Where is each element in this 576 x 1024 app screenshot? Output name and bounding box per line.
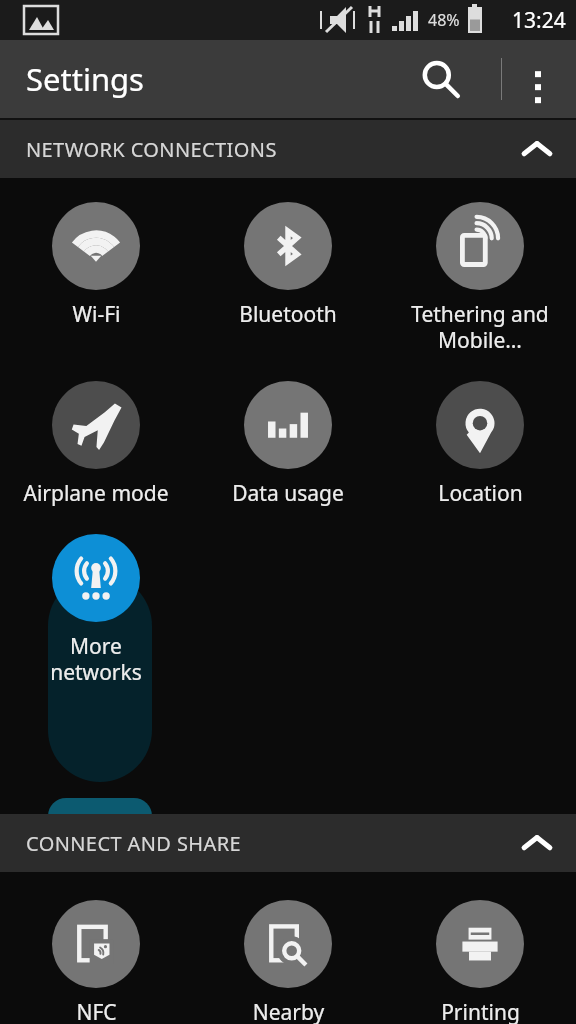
button[interactable]: Airplane mode [8, 379, 184, 508]
staticText: CONNECT AND SHARE [26, 830, 242, 857]
button[interactable]: Bluetooth [200, 200, 376, 329]
button[interactable]: More options [510, 45, 566, 113]
button[interactable]: More networks [8, 532, 184, 687]
staticText: Bluetooth [239, 300, 337, 329]
button[interactable]: Tethering and Mobile… [392, 200, 568, 355]
button[interactable]: Wi-Fi [8, 200, 184, 329]
staticText: Wi-Fi [72, 300, 121, 329]
staticText: Data usage [232, 479, 344, 508]
button[interactable]: Nearby devices [200, 898, 376, 1024]
staticText: Nearby devices [252, 998, 325, 1024]
staticText: NFC [76, 998, 117, 1024]
button[interactable]: Search [408, 47, 472, 111]
button[interactable]: NFC [8, 898, 184, 1024]
button[interactable]: Location [392, 379, 568, 508]
staticText: Printing [441, 998, 520, 1024]
staticText: Location [438, 479, 523, 508]
staticText: More networks [50, 632, 142, 687]
staticText: NETWORK CONNECTIONS [26, 136, 277, 163]
staticText: Airplane mode [23, 479, 169, 508]
staticText: Tethering and Mobile… [411, 300, 549, 355]
button[interactable]: Printing [392, 898, 568, 1024]
button[interactable]: NETWORK CONNECTIONS [0, 120, 576, 178]
staticText: 13:24 [512, 6, 566, 35]
staticText: Settings [26, 58, 144, 100]
staticText: 48% [428, 9, 460, 31]
button[interactable]: CONNECT AND SHARE [0, 814, 576, 872]
button[interactable]: Data usage [200, 379, 376, 508]
